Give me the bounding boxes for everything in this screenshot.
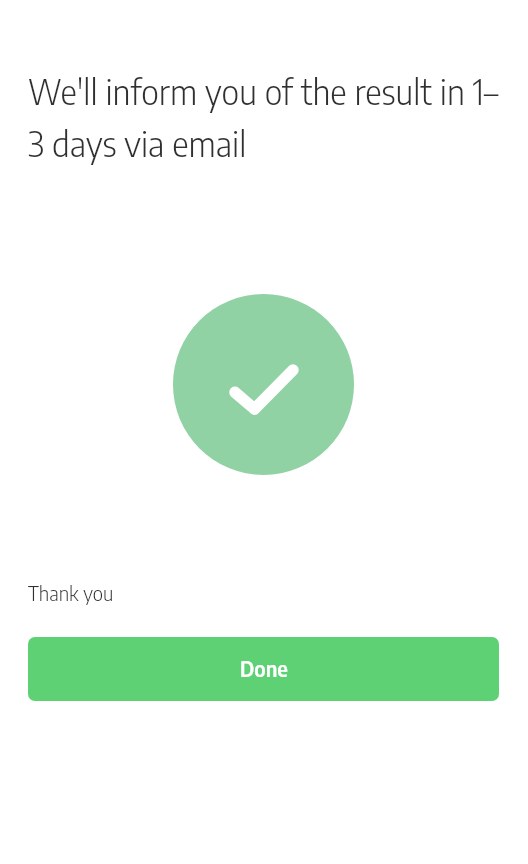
staticText: Done (240, 655, 288, 681)
button[interactable]: Done (28, 637, 499, 701)
staticText: Thank you (28, 580, 114, 605)
other: Request submitted (173, 294, 354, 475)
staticText: We'll inform you of the result in 1– 3 d… (28, 69, 499, 164)
